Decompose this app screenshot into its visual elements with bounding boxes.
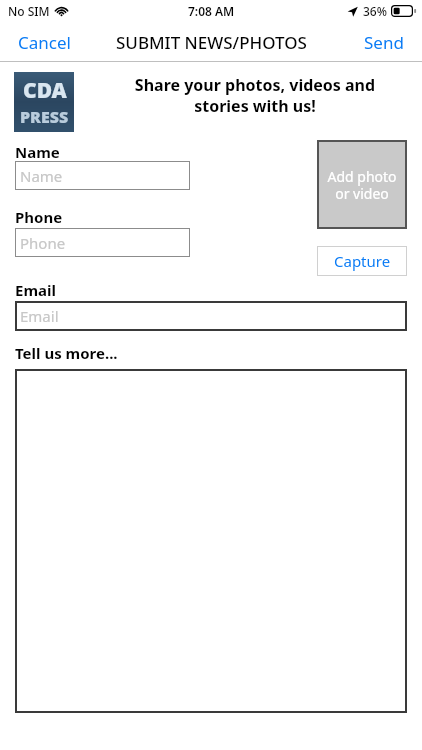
- button[interactable]: Email: [15, 301, 407, 331]
- button[interactable]: Name: [15, 161, 190, 190]
- staticText: CDA: [23, 76, 67, 105]
- button[interactable]: Phone: [15, 228, 190, 257]
- staticText: Cancel: [18, 31, 71, 54]
- staticText: Email: [20, 306, 59, 326]
- staticText: 36%: [363, 3, 387, 19]
- staticText: Phone: [15, 207, 63, 227]
- staticText: Share your photos, videos and stories wi…: [96, 74, 414, 117]
- staticText: Capture: [334, 251, 391, 271]
- button[interactable]: [15, 369, 407, 713]
- staticText: Add photo or video: [327, 167, 397, 203]
- staticText: SUBMIT NEWS/PHOTOS: [116, 31, 307, 54]
- staticText: Email: [15, 280, 56, 300]
- staticText: No SIM: [8, 3, 50, 19]
- staticText: Tell us more...: [15, 343, 118, 363]
- staticText: Send: [364, 31, 404, 54]
- button[interactable]: Capture: [317, 246, 407, 276]
- button[interactable]: Add photo or video: [317, 140, 407, 229]
- other: CDA Press logo: [14, 72, 74, 132]
- staticText: Name: [20, 166, 63, 186]
- button[interactable]: Cancel: [0, 25, 89, 60]
- button[interactable]: Send: [346, 25, 422, 60]
- staticText: PRESS: [20, 106, 69, 128]
- staticText: 7:08 AM: [188, 3, 235, 19]
- staticText: Name: [15, 142, 60, 162]
- staticText: Phone: [20, 233, 66, 253]
